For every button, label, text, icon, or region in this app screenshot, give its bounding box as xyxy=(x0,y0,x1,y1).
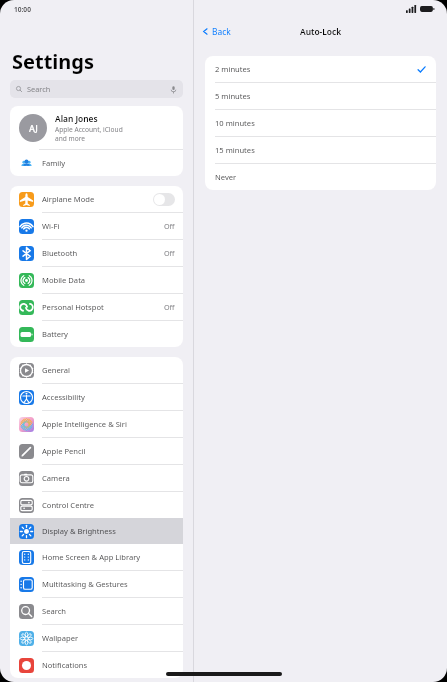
button[interactable]: General xyxy=(10,357,183,383)
staticText: and more xyxy=(55,134,86,143)
staticText: Never xyxy=(215,172,237,182)
staticText: Battery xyxy=(42,329,68,339)
button[interactable]: Bluetooth xyxy=(10,240,183,266)
button[interactable]: Never xyxy=(205,164,436,190)
staticText: Apple Intelligence & Siri xyxy=(42,419,127,429)
staticText: Settings xyxy=(12,48,94,75)
button[interactable]: Apple Intelligence & Siri xyxy=(10,411,183,437)
button[interactable]: AJ xyxy=(10,106,183,149)
button[interactable]: Camera xyxy=(10,465,183,491)
button[interactable]: 10 minutes xyxy=(205,110,436,136)
button[interactable]: 2 minutes xyxy=(205,56,436,82)
button[interactable]: Wallpaper xyxy=(10,625,183,651)
button[interactable]: Search xyxy=(10,80,183,98)
staticText: Alan Jones xyxy=(55,113,98,124)
staticText: General xyxy=(42,365,70,375)
staticText: Off xyxy=(164,248,175,258)
staticText: Search xyxy=(42,606,67,616)
button[interactable] xyxy=(153,193,175,206)
staticText: Mobile Data xyxy=(42,275,86,285)
button[interactable]: Battery xyxy=(10,321,183,347)
staticText: Bluetooth xyxy=(42,248,78,258)
staticText: Apple Pencil xyxy=(42,446,86,456)
staticText: Accessibility xyxy=(42,392,85,402)
staticText: Apple Account, iCloud xyxy=(55,125,123,134)
button[interactable]: Notifications xyxy=(10,652,183,678)
staticText: 5 minutes xyxy=(215,91,251,101)
button[interactable]: Display & Brightness xyxy=(10,518,183,544)
button[interactable]: Apple Pencil xyxy=(10,438,183,464)
staticText: Wallpaper xyxy=(42,633,79,643)
button[interactable]: Mobile Data xyxy=(10,267,183,293)
button[interactable]: Home Screen & App Library xyxy=(10,544,183,570)
button[interactable]: 15 minutes xyxy=(205,137,436,163)
staticText: Multitasking & Gestures xyxy=(42,579,128,589)
button[interactable]: Airplane Mode xyxy=(10,186,183,212)
button[interactable]: Accessibility xyxy=(10,384,183,410)
staticText: Airplane Mode xyxy=(42,194,95,204)
staticText: Auto-Lock xyxy=(300,26,342,37)
staticText: Camera xyxy=(42,473,70,483)
staticText: Off xyxy=(164,221,175,231)
button[interactable]: Control Centre xyxy=(10,492,183,518)
staticText: Wi-Fi xyxy=(42,221,60,231)
button[interactable]: Family xyxy=(10,150,183,176)
staticText: 2 minutes xyxy=(215,64,251,74)
staticText: 10 minutes xyxy=(215,118,255,128)
button[interactable]: 5 minutes xyxy=(205,83,436,109)
button[interactable]: Multitasking & Gestures xyxy=(10,571,183,597)
staticText: Search xyxy=(27,84,51,94)
staticText: 10:00 xyxy=(14,5,31,14)
staticText: Back xyxy=(212,26,231,37)
staticText: AJ xyxy=(29,122,38,134)
button[interactable]: Back xyxy=(194,23,237,40)
staticText: Notifications xyxy=(42,660,88,670)
button[interactable]: Personal Hotspot xyxy=(10,294,183,320)
staticText: Off xyxy=(164,302,175,312)
staticText: 15 minutes xyxy=(215,145,255,155)
staticText: Home Screen & App Library xyxy=(42,552,141,562)
staticText: Family xyxy=(42,158,66,168)
button[interactable]: Wi-Fi xyxy=(10,213,183,239)
staticText: Personal Hotspot xyxy=(42,302,104,312)
staticText: Display & Brightness xyxy=(42,526,116,536)
staticText: Control Centre xyxy=(42,500,95,510)
button[interactable]: Search xyxy=(10,598,183,624)
